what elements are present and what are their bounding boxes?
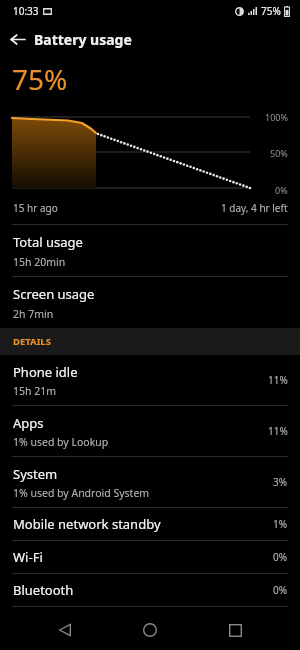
staticText: Bluetooth bbox=[13, 581, 74, 599]
staticText: Phone idle bbox=[13, 363, 78, 381]
staticText: 0% bbox=[275, 184, 288, 196]
staticText: 11% bbox=[268, 424, 288, 438]
button[interactable]: Phone idle bbox=[0, 355, 300, 405]
staticText: 15h 21m bbox=[13, 384, 57, 398]
button[interactable]: Bluetooth bbox=[0, 574, 300, 606]
button[interactable]: Back bbox=[45, 610, 85, 650]
button[interactable]: Apps bbox=[0, 406, 300, 456]
staticText: 75% bbox=[261, 4, 281, 18]
staticText: Wi-Fi bbox=[13, 548, 43, 566]
button[interactable]: Back bbox=[0, 22, 34, 56]
staticText: 11% bbox=[268, 373, 288, 387]
button[interactable]: System bbox=[0, 457, 300, 507]
button[interactable]: Recent apps bbox=[215, 610, 255, 650]
staticText: Total usage bbox=[13, 233, 83, 251]
staticText: Screen usage bbox=[13, 285, 95, 303]
staticText: DETAILS bbox=[13, 335, 51, 348]
staticText: System bbox=[13, 465, 58, 483]
staticText: 50% bbox=[270, 147, 288, 159]
staticText: Apps bbox=[13, 414, 44, 432]
staticText: 100% bbox=[265, 111, 288, 123]
staticText: Mobile network standby bbox=[13, 515, 161, 533]
button[interactable]: Screen usage bbox=[0, 277, 300, 328]
staticText: 15 hr ago bbox=[13, 201, 58, 215]
staticText: 0% bbox=[273, 583, 288, 597]
button[interactable]: Wi-Fi bbox=[0, 541, 300, 573]
staticText: 1% used by Lookup bbox=[13, 435, 109, 449]
staticText: 1% bbox=[273, 517, 288, 531]
button[interactable]: Home bbox=[130, 610, 170, 650]
staticText: 15h 20min bbox=[13, 255, 66, 269]
staticText: 1 day, 4 hr left bbox=[221, 201, 288, 215]
staticText: Battery usage bbox=[34, 30, 132, 49]
staticText: 75% bbox=[12, 60, 68, 98]
staticText: 0% bbox=[273, 550, 288, 564]
button[interactable]: Total usage bbox=[0, 225, 300, 276]
staticText: 10:33 bbox=[13, 4, 39, 18]
staticText: 3% bbox=[273, 475, 288, 489]
staticText: 2h 7min bbox=[13, 307, 54, 321]
button[interactable]: Mobile network standby bbox=[0, 508, 300, 540]
staticText: 1% used by Android System bbox=[13, 486, 150, 500]
